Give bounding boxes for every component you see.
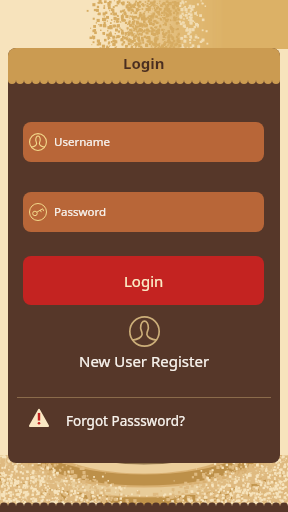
staticText: Forgot Passsword?: [66, 412, 185, 430]
button[interactable]: Login: [23, 256, 264, 305]
button[interactable]: New User Register: [8, 316, 280, 367]
button[interactable]: Username: [23, 122, 264, 162]
staticText: New User Register: [79, 351, 210, 371]
staticText: Password: [54, 204, 107, 220]
button[interactable]: Password: [23, 192, 264, 232]
staticText: Username: [54, 134, 110, 150]
button[interactable]: Forgot Passsword?: [8, 398, 280, 444]
staticText: Login: [123, 53, 165, 73]
staticText: Login: [124, 271, 164, 291]
